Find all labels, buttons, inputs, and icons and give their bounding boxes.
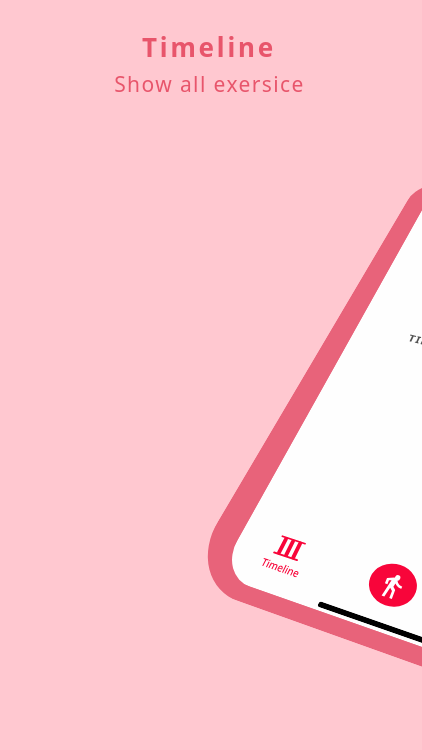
staticText: Timeline xyxy=(142,29,276,64)
staticText: Show all exersice xyxy=(114,70,305,99)
staticText: TIMELINE xyxy=(406,331,422,358)
button[interactable]: Start exercise xyxy=(362,558,422,613)
staticText: Timeline xyxy=(259,554,302,581)
button[interactable]: Timeline xyxy=(250,529,320,585)
